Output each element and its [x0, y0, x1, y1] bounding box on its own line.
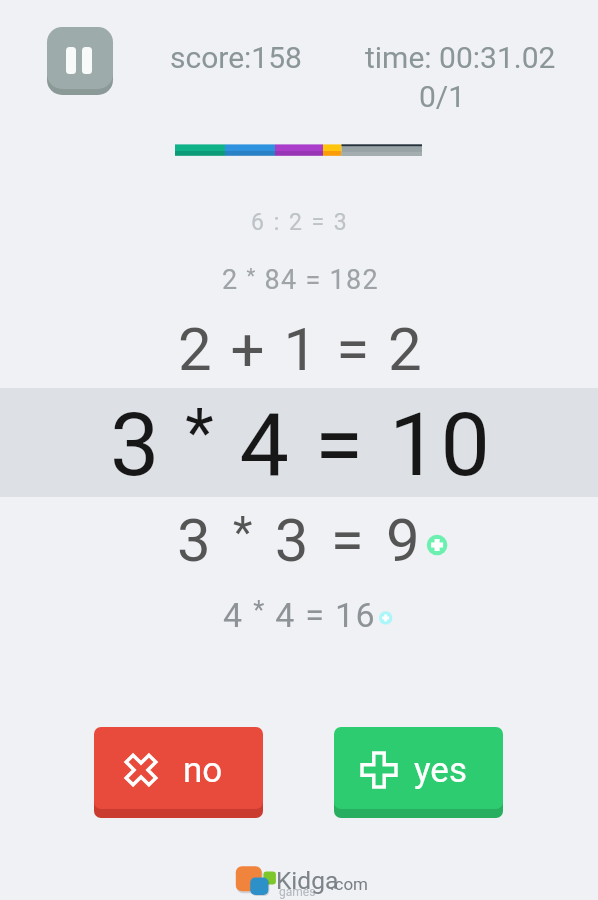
staticText: 6 : 2 = 3 — [251, 209, 349, 236]
staticText: Kidga — [276, 866, 339, 895]
staticText: 3 * 4 = 10 — [110, 393, 492, 496]
staticText: no — [183, 750, 223, 791]
button[interactable]: 4 * 4 = 16 — [0, 580, 598, 645]
button[interactable]: Pause — [47, 27, 113, 95]
staticText: .com — [330, 874, 368, 894]
button[interactable]: yes — [334, 727, 503, 818]
button[interactable]: 2 * 84 = 182 — [0, 243, 598, 300]
staticText: 3 * 3 = 9 — [177, 505, 424, 575]
button[interactable]: 3 * 3 = 9 — [0, 497, 598, 580]
button[interactable]: 6 : 2 = 3 — [0, 186, 598, 243]
button[interactable]: 2 + 1 = 2 — [0, 300, 598, 388]
staticText: 2 + 1 = 2 — [178, 314, 424, 384]
staticText: yes — [414, 750, 467, 791]
button[interactable]: no — [94, 727, 263, 818]
staticText: 4 * 4 = 16 — [223, 595, 376, 635]
button[interactable]: 3 * 4 = 10 — [0, 388, 598, 497]
staticText: games — [279, 885, 316, 899]
staticText: score:158 — [170, 40, 302, 75]
button[interactable]: Kidga games — [234, 862, 364, 898]
staticText: time: 00:31.02 — [365, 40, 556, 75]
staticText: 0/1 — [419, 79, 466, 114]
staticText: 2 * 84 = 182 — [222, 264, 379, 296]
